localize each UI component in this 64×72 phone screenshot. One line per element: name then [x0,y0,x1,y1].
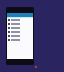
button[interactable] [7,38,33,42]
button[interactable] [7,34,33,38]
button[interactable] [7,22,33,26]
button[interactable] [7,18,33,22]
button[interactable] [7,30,33,34]
button[interactable] [7,26,33,30]
